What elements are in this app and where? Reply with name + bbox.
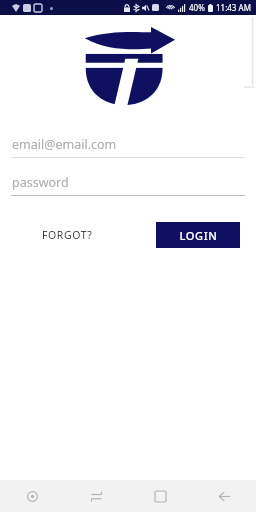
button[interactable]: email@email.com	[0, 131, 256, 157]
staticText: FORGOT?	[42, 228, 93, 242]
button[interactable]: Recents dot	[0, 480, 64, 512]
staticText: LOGIN	[179, 228, 218, 243]
button[interactable]: Back	[192, 480, 256, 512]
button[interactable]: FORGOT?	[38, 222, 97, 248]
button[interactable]: password	[0, 169, 256, 195]
button[interactable]: Switch apps	[64, 480, 128, 512]
staticText: email@email.com	[12, 136, 117, 153]
button[interactable]: Home	[128, 480, 192, 512]
button[interactable]: LOGIN	[156, 222, 240, 248]
staticText: 11:43 AM	[216, 2, 251, 13]
staticText: 40%	[189, 2, 205, 13]
staticText: password	[12, 174, 69, 191]
